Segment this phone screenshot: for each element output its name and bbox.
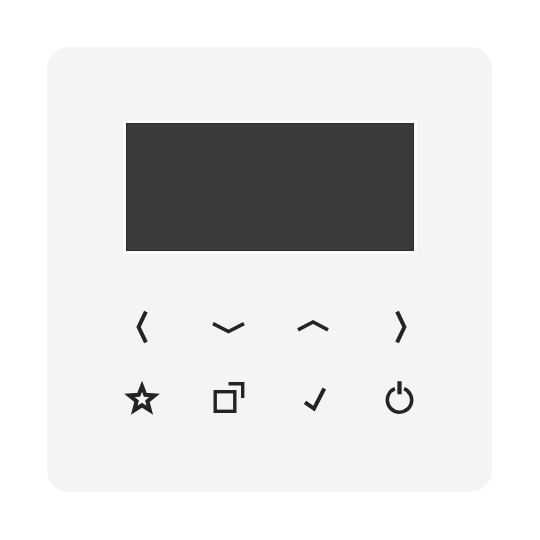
button[interactable]: Scroll up (284, 297, 344, 357)
button[interactable]: Previous (112, 297, 172, 357)
button[interactable]: Power (370, 369, 430, 429)
button[interactable]: Confirm (284, 369, 344, 429)
button[interactable]: Copy (198, 369, 258, 429)
button[interactable]: Scroll down (198, 297, 258, 357)
button[interactable]: Favourite (112, 369, 172, 429)
button[interactable]: Next (370, 297, 430, 357)
